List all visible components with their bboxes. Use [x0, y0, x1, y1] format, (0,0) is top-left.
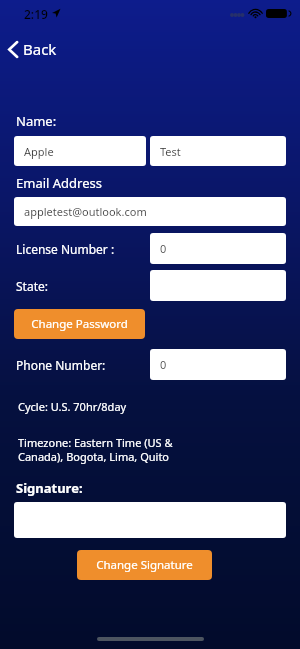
button[interactable]: 0 [150, 233, 286, 264]
staticText: Change Signature [96, 557, 193, 573]
button[interactable]: appletest@outlook.com [14, 197, 286, 226]
staticText: Apple [24, 144, 54, 159]
button[interactable]: 0 [150, 349, 286, 380]
staticText: Email Address [16, 174, 102, 192]
button[interactable]: Change Signature [77, 550, 212, 580]
staticText: Phone Number: [16, 357, 106, 373]
staticText: State: [16, 278, 48, 294]
button[interactable]: Apple [14, 136, 146, 166]
staticText: Name: [16, 112, 57, 130]
button[interactable]: Back [0, 36, 69, 62]
staticText: 2:19 [24, 6, 48, 22]
staticText: 0 [160, 241, 167, 256]
staticText: appletest@outlook.com [24, 204, 147, 219]
staticText: Test [160, 144, 181, 159]
button[interactable] [150, 270, 286, 301]
staticText: Timezone: Eastern Time (US & Canada), Bo… [18, 435, 190, 464]
button[interactable]: Test [150, 136, 286, 166]
button[interactable]: Signature area [14, 502, 286, 538]
staticText: Back [23, 39, 57, 59]
staticText: Change Password [31, 316, 128, 332]
staticText: Cycle: U.S. 70hr/8day [18, 399, 127, 414]
button[interactable]: Change Password [14, 309, 145, 339]
staticText: License Number : [16, 241, 115, 257]
staticText: Signature: [16, 479, 83, 497]
staticText: 0 [160, 357, 167, 372]
